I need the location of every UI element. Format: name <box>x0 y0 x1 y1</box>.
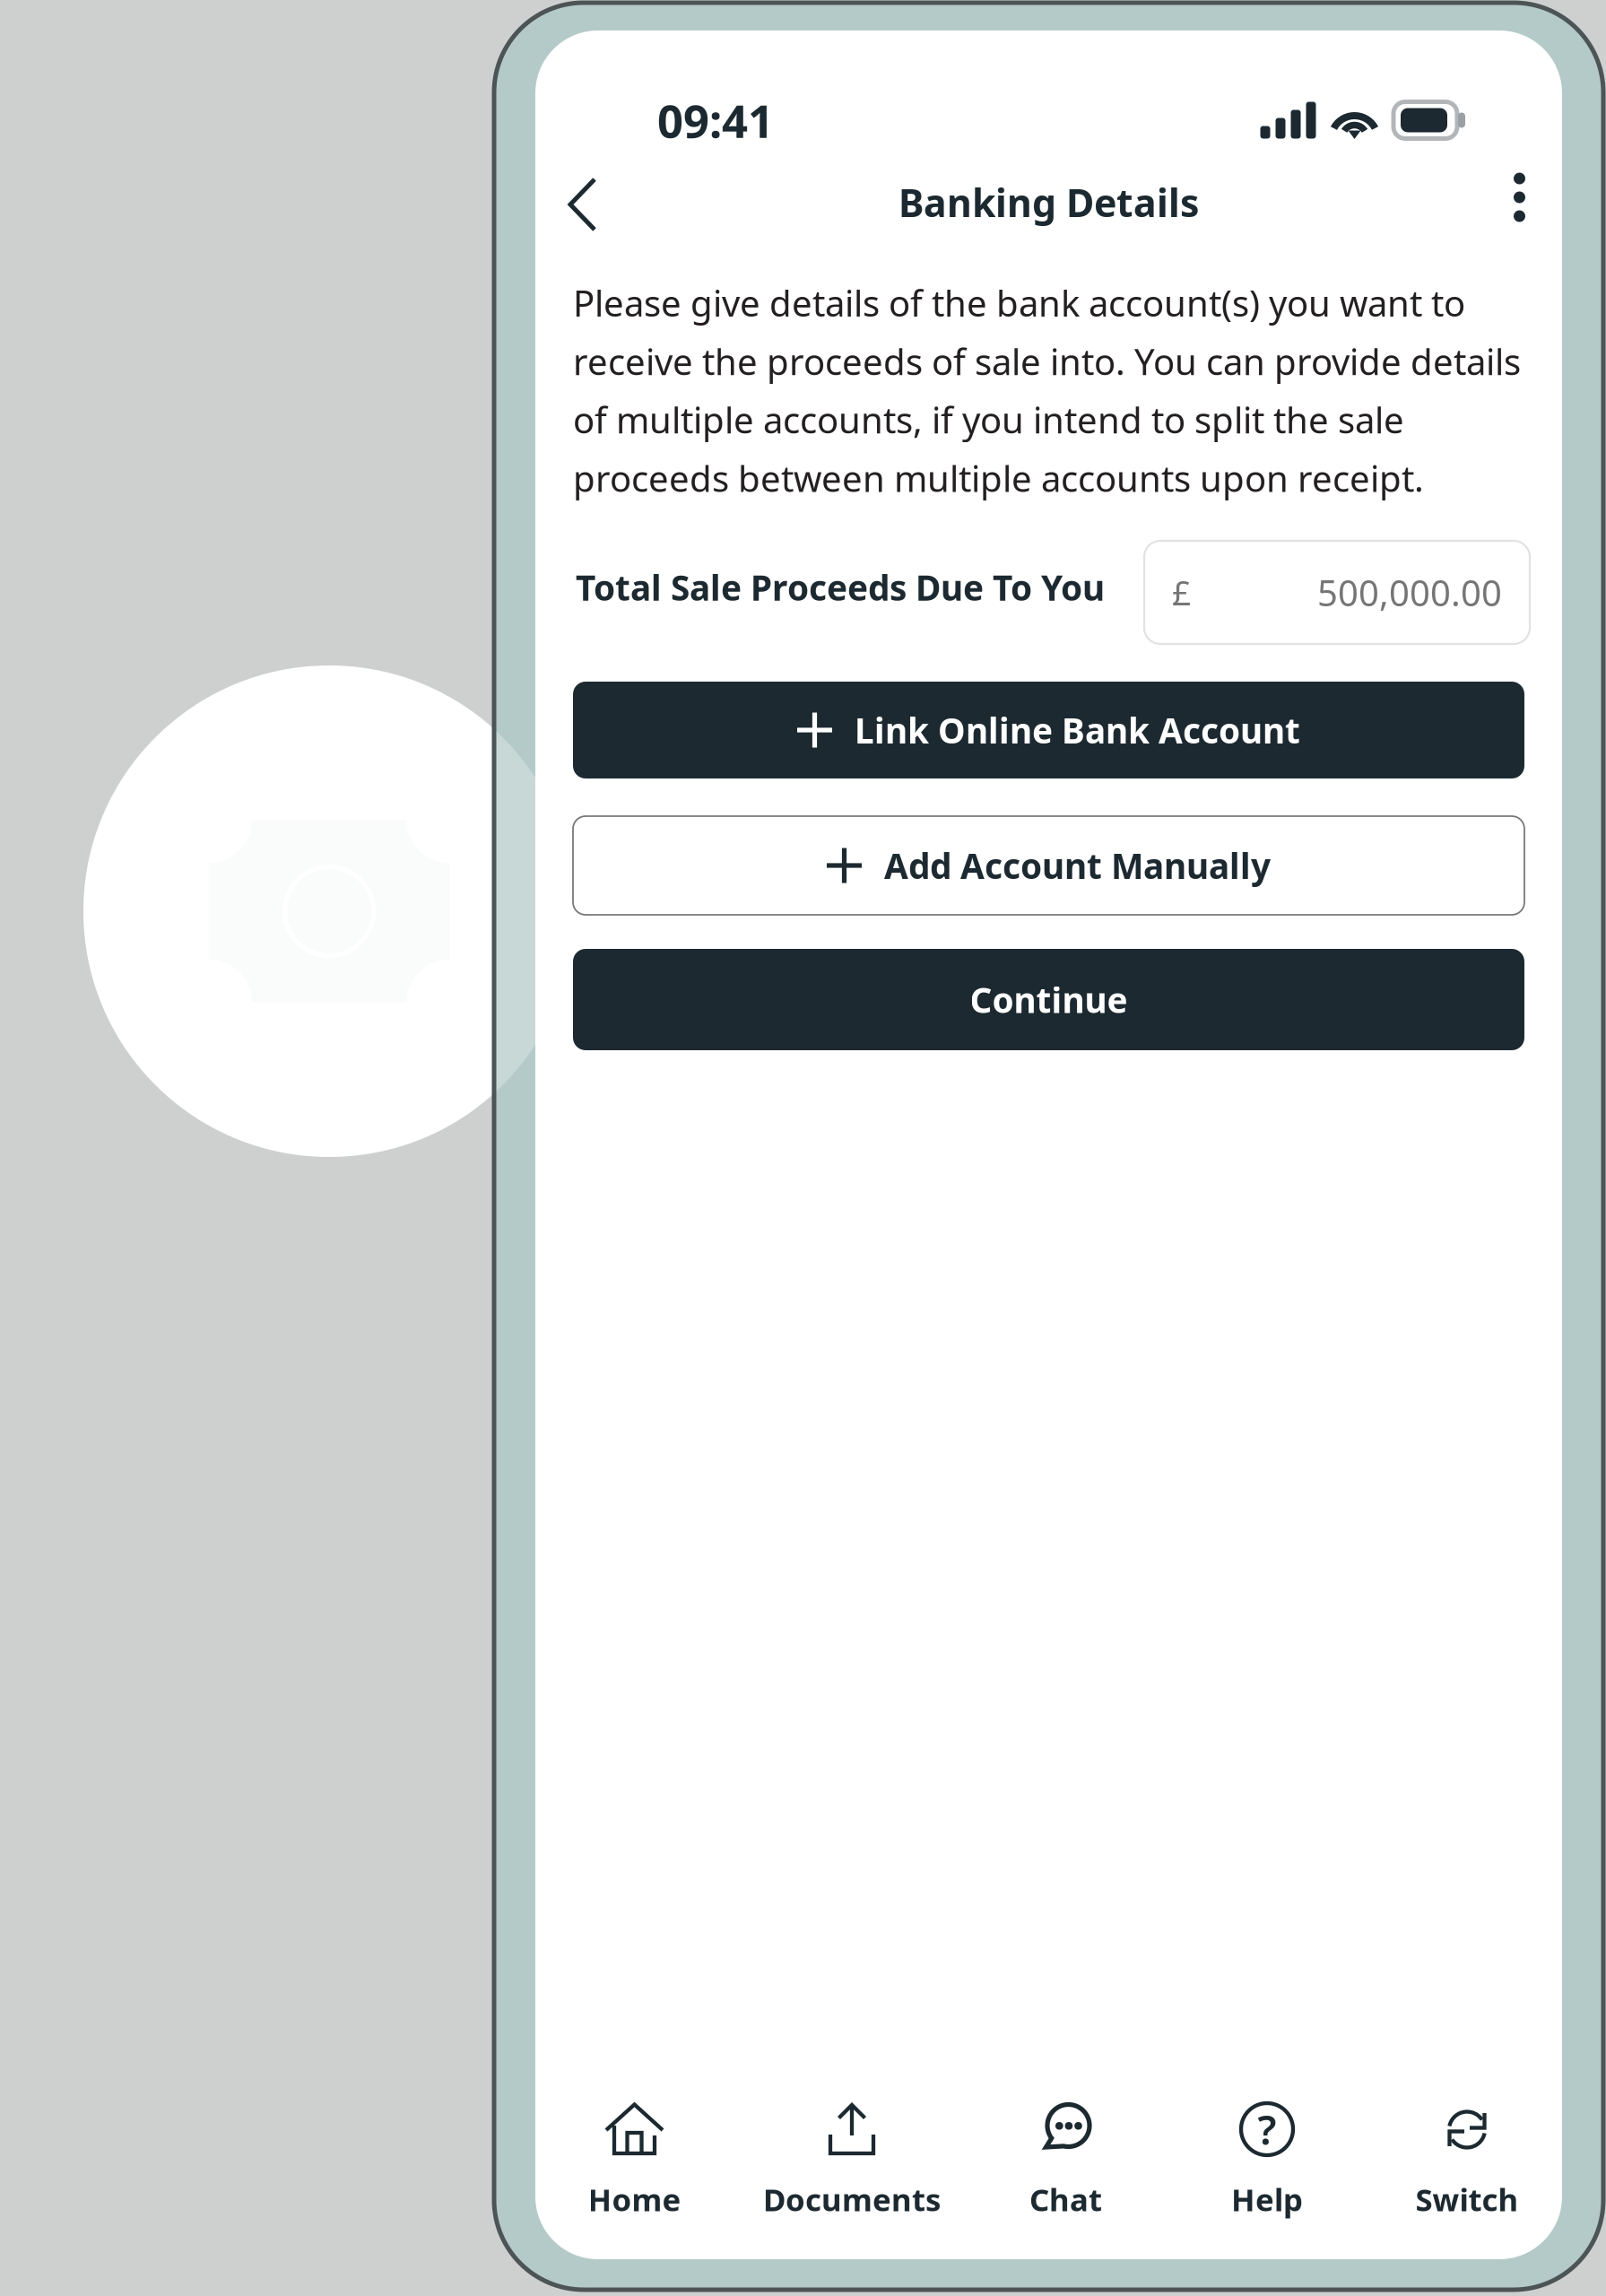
staticText: Chat <box>1029 2179 1102 2220</box>
button[interactable]: Continue <box>573 949 1524 1050</box>
staticText: Total Sale Proceeds Due To You <box>576 564 1105 610</box>
staticText: Please give details of the bank account(… <box>573 279 1521 502</box>
button[interactable]: Link Online Bank Account <box>573 682 1524 778</box>
staticText: Documents <box>763 2179 941 2220</box>
staticText: £ <box>1172 570 1191 615</box>
staticText: 500,000.00 <box>1317 569 1502 616</box>
staticText: Help <box>1231 2179 1303 2220</box>
button[interactable]: ? <box>1173 2102 1361 2220</box>
staticText: ? <box>1258 2102 1276 2156</box>
staticText: Add Account Manually <box>884 842 1271 888</box>
button[interactable]: Home <box>540 2102 729 2220</box>
staticText: 09:41 <box>657 90 774 150</box>
button[interactable]: Switch <box>1373 2102 1561 2220</box>
button[interactable]: Add Account Manually <box>573 816 1524 915</box>
staticText: Continue <box>970 977 1128 1023</box>
staticText: Link Online Bank Account <box>855 707 1300 753</box>
button[interactable]: More options <box>1494 159 1545 236</box>
button[interactable]: Documents <box>749 2102 955 2220</box>
button[interactable]: Chat <box>972 2102 1160 2220</box>
staticText: Home <box>588 2179 681 2220</box>
button[interactable]: Back <box>555 166 610 243</box>
staticText: Switch <box>1415 2179 1519 2220</box>
staticText: Banking Details <box>898 177 1199 228</box>
